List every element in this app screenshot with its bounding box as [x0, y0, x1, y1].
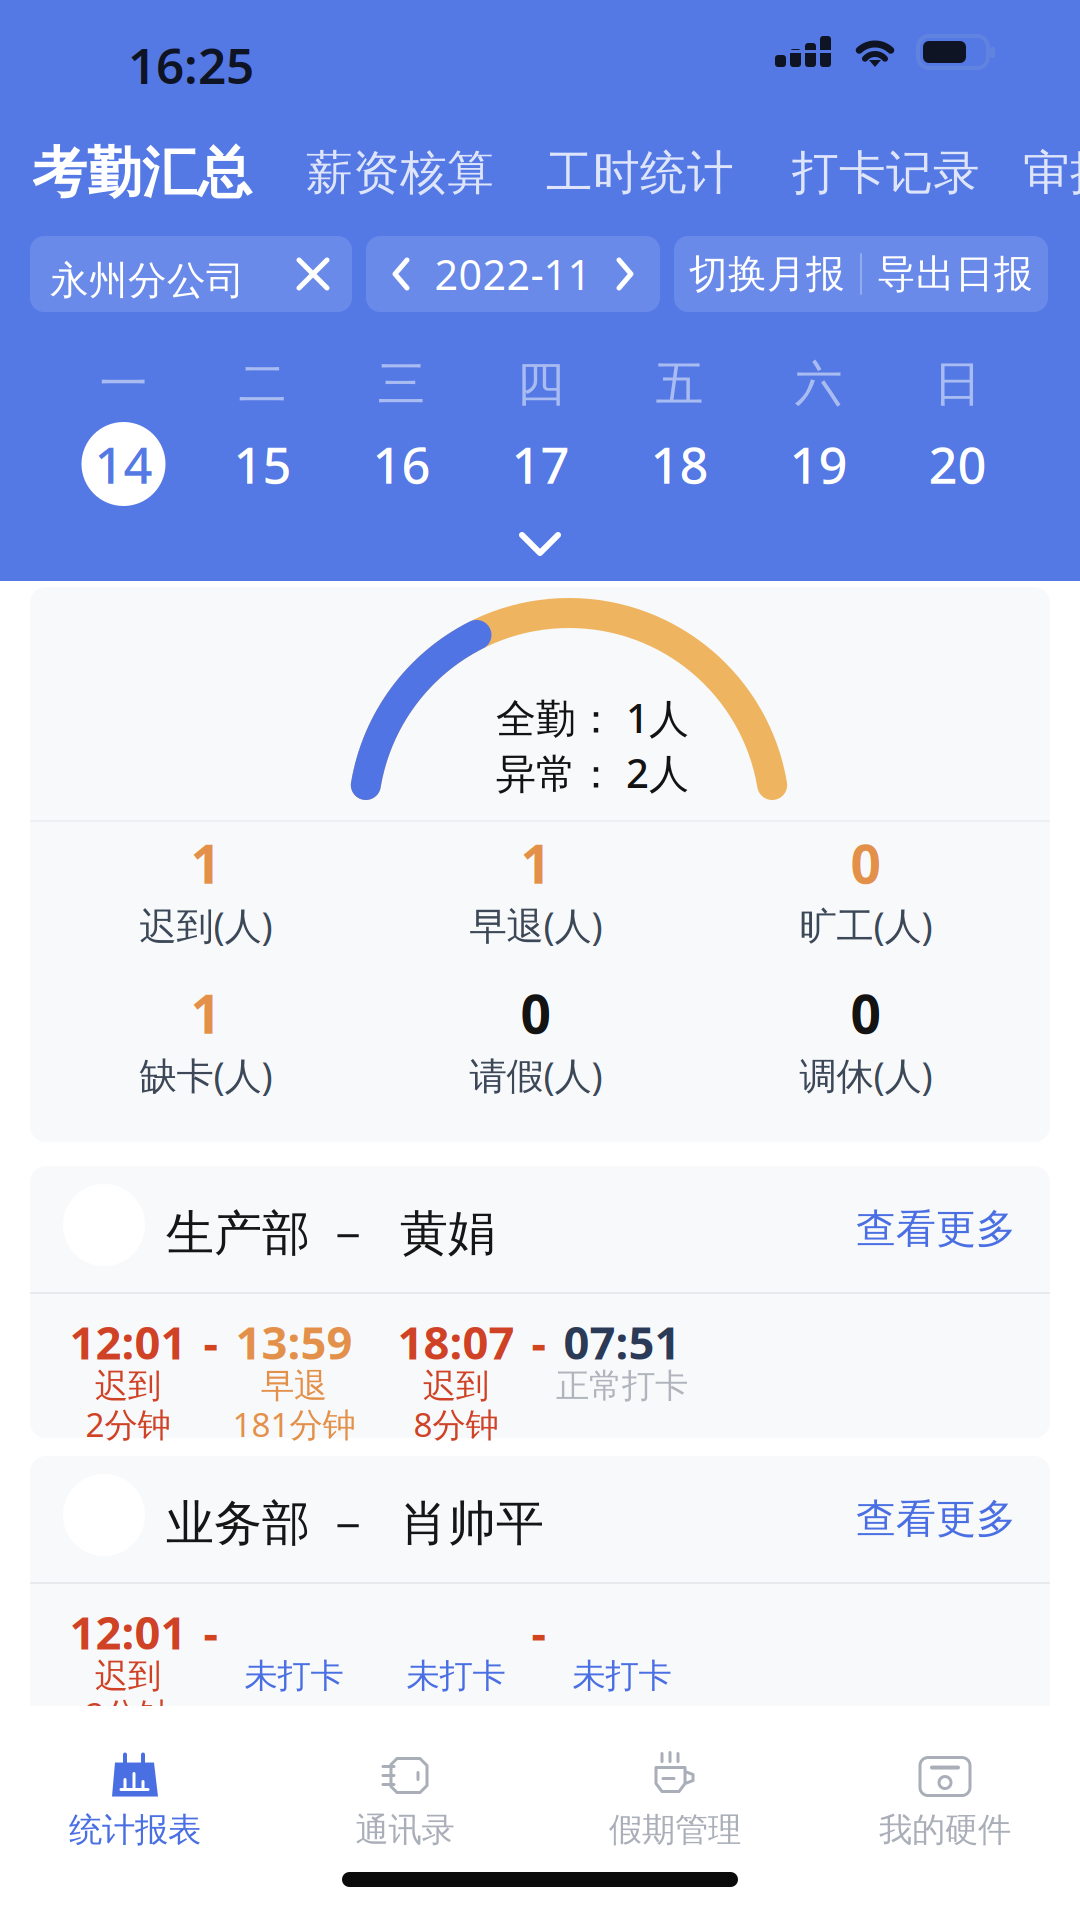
staticText: 12:01 [69, 1602, 186, 1662]
button[interactable]: 14 [54, 418, 193, 510]
staticText: 我的硬件 [879, 1809, 1011, 1850]
staticText: 迟到(人) [139, 900, 272, 950]
staticText: 0 [850, 828, 881, 898]
staticText: 早退(人) [469, 900, 602, 950]
button[interactable]: 生产部 － 黄娟 [30, 1166, 1050, 1292]
staticText: 14 [94, 430, 152, 498]
staticText: 考勤汇总 [32, 139, 252, 206]
staticText: 19 [789, 430, 847, 498]
staticText: 旷工(人) [799, 900, 932, 950]
staticText: 生产部 － 黄娟 [166, 1204, 496, 1263]
staticText: - [203, 1312, 218, 1372]
button[interactable]: 通讯录 [270, 1740, 540, 1860]
button[interactable]: 15 [193, 418, 332, 510]
button[interactable]: 统计报表 [0, 1740, 270, 1860]
staticText: 导出日报 [877, 250, 1033, 298]
staticText: 20 [928, 430, 986, 498]
button[interactable]: 20 [888, 418, 1027, 510]
button[interactable]: 切换月报 [674, 236, 860, 312]
staticText: 早退 [261, 1365, 327, 1406]
staticText: 2分钟 [85, 1692, 170, 1736]
staticText: 1 [190, 978, 221, 1048]
staticText: 请假(人) [469, 1050, 602, 1100]
staticText: 15 [233, 430, 291, 498]
staticText: 日 [933, 354, 981, 413]
staticText: 正常打卡 [556, 1365, 688, 1406]
staticText: 0 [520, 978, 551, 1048]
staticText: 六 [794, 354, 842, 413]
staticText: 12:01 [69, 1312, 186, 1372]
button[interactable]: 18 [610, 418, 749, 510]
staticText: 18 [650, 430, 708, 498]
staticText: 工时统计 [546, 144, 734, 202]
button[interactable]: 永州分公司 [30, 236, 352, 312]
button[interactable]: 薪资核算 [306, 138, 494, 208]
button[interactable]: 打卡记录 [792, 138, 980, 208]
button[interactable]: 业务部 － 肖帅平 [30, 1456, 1050, 1582]
staticText: 0 [850, 978, 881, 1048]
staticText: 17 [511, 430, 569, 498]
staticText: 13:59 [235, 1312, 352, 1372]
staticText: - [531, 1312, 546, 1372]
staticText: 全勤： 1人 [496, 691, 689, 744]
staticText: 业务部 － 肖帅平 [166, 1494, 544, 1553]
staticText: 五 [655, 354, 703, 413]
button[interactable]: 2022-11 [366, 236, 660, 312]
staticText: 16 [372, 430, 430, 498]
staticText: 假期管理 [609, 1809, 741, 1850]
staticText: 2022-11 [434, 247, 591, 301]
button[interactable]: 考勤汇总 [32, 138, 252, 208]
staticText: 181分钟 [232, 1402, 355, 1446]
button[interactable]: 我的硬件 [810, 1740, 1080, 1860]
staticText: 18:07 [397, 1312, 514, 1372]
button[interactable]: 工时统计 [546, 138, 734, 208]
staticText: 未打卡 [572, 1655, 671, 1696]
button[interactable]: 导出日报 [862, 236, 1048, 312]
staticText: 16:25 [128, 32, 254, 97]
button[interactable]: 假期管理 [540, 1740, 810, 1860]
staticText: 2分钟 [85, 1402, 170, 1446]
staticText: 1 [190, 828, 221, 898]
staticText: 切换月报 [689, 250, 845, 298]
button[interactable]: 展开日历 [503, 513, 577, 575]
staticText: 统计报表 [69, 1809, 201, 1850]
staticText: 审批 [1023, 144, 1080, 202]
staticText: 迟到 [95, 1655, 161, 1696]
staticText: 迟到 [95, 1365, 161, 1406]
staticText: 07:51 [563, 1312, 680, 1372]
staticText: 永州分公司 [50, 257, 245, 304]
staticText: 迟到 [423, 1365, 489, 1406]
staticText: 二 [238, 354, 286, 413]
staticText: 打卡记录 [792, 144, 980, 202]
button[interactable]: 16 [332, 418, 471, 510]
staticText: 查看更多 [856, 1204, 1016, 1253]
button[interactable]: 19 [749, 418, 888, 510]
staticText: 三 [377, 354, 425, 413]
button[interactable]: 17 [471, 418, 610, 510]
staticText: 一 [99, 354, 147, 413]
staticText: 四 [516, 354, 564, 413]
staticText: 通讯录 [355, 1809, 454, 1850]
staticText: 异常： 2人 [496, 746, 689, 799]
staticText: 调休(人) [799, 1050, 932, 1100]
staticText: 未打卡 [406, 1655, 505, 1696]
staticText: - [203, 1602, 218, 1662]
staticText: 未打卡 [244, 1655, 343, 1696]
button[interactable]: 审批 [1023, 138, 1080, 208]
staticText: 1 [520, 828, 551, 898]
staticText: - [531, 1602, 546, 1662]
staticText: 薪资核算 [306, 144, 494, 202]
staticText: 查看更多 [856, 1494, 1016, 1543]
staticText: 8分钟 [413, 1402, 498, 1446]
staticText: 缺卡(人) [139, 1050, 272, 1100]
